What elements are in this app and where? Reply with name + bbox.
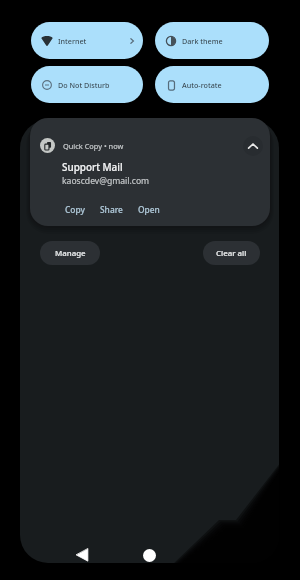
staticText: Manage bbox=[55, 248, 86, 259]
button[interactable]: Share bbox=[99, 202, 124, 217]
button[interactable]: Internet bbox=[31, 22, 143, 59]
button[interactable]: Auto-rotate bbox=[155, 66, 269, 103]
staticText: Open bbox=[138, 204, 160, 215]
button[interactable]: Open bbox=[137, 202, 161, 217]
button[interactable]: Do Not Disturb bbox=[31, 66, 143, 103]
staticText: Quick Copy • now bbox=[63, 141, 124, 151]
button[interactable]: Home bbox=[140, 546, 158, 564]
button[interactable]: Quick Copy • now bbox=[30, 118, 270, 226]
staticText: Clear all bbox=[216, 248, 247, 259]
staticText: Dark theme bbox=[182, 36, 223, 46]
staticText: Auto-rotate bbox=[182, 80, 222, 90]
staticText: Share bbox=[100, 204, 123, 215]
button[interactable]: Manage bbox=[40, 241, 100, 265]
staticText: Support Mail bbox=[62, 160, 123, 173]
staticText: kaoscdev@gmail.com bbox=[62, 175, 150, 187]
button[interactable]: Copy bbox=[64, 202, 86, 217]
staticText: Internet bbox=[58, 36, 87, 46]
staticText: Do Not Disturb bbox=[58, 80, 110, 90]
button[interactable]: Dark theme bbox=[155, 22, 269, 59]
button[interactable]: Collapse notification bbox=[243, 136, 263, 156]
button[interactable]: Clear all bbox=[203, 241, 260, 265]
button[interactable]: Back bbox=[73, 546, 91, 564]
staticText: Copy bbox=[65, 204, 85, 215]
